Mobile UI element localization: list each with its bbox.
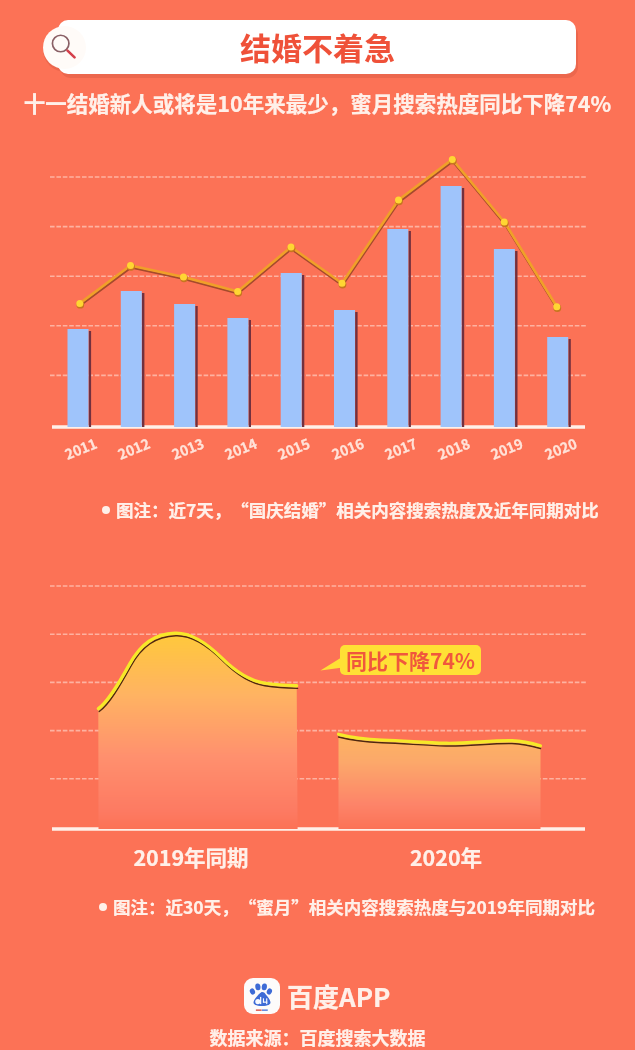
staticText: 同比下降74% (346, 645, 476, 675)
button[interactable]: 图注：近30天，“蜜月”相关内容搜索热度与2019年同期对比 (99, 894, 595, 919)
button[interactable] (58, 20, 576, 74)
staticText: 百度APP (287, 977, 391, 1015)
staticText: 结婚不着急 (0, 24, 635, 69)
staticText: 2011 (61, 432, 100, 464)
staticText: 2017 (381, 432, 420, 464)
staticText: 2014 (221, 432, 260, 464)
button[interactable]: 图注：近7天，“国庆结婚”相关内容搜索热度及近年同期对比 (102, 497, 599, 522)
staticText: 2019 (487, 432, 526, 464)
staticText: 图注：近7天，“国庆结婚”相关内容搜索热度及近年同期对比 (116, 497, 599, 522)
staticText: 数据来源：百度搜索大数据 (0, 1024, 635, 1050)
staticText: 2018 (434, 432, 473, 464)
button[interactable]: Search (43, 26, 86, 69)
staticText: 2012 (114, 432, 153, 464)
staticText: 2013 (168, 432, 207, 464)
staticText: 图注：近30天，“蜜月”相关内容搜索热度与2019年同期对比 (113, 894, 595, 919)
staticText: 2016 (328, 432, 367, 464)
staticText: 2015 (274, 432, 313, 464)
staticText: 2020年 (366, 841, 526, 872)
button[interactable]: 同比下降74% (340, 645, 481, 675)
staticText: 2019年同期 (111, 841, 271, 872)
staticText: 十一结婚新人或将是10年来最少，蜜月搜索热度同比下降74% (0, 87, 635, 118)
staticText: 2020 (541, 432, 580, 464)
button[interactable]: 百度APP (0, 977, 635, 1015)
